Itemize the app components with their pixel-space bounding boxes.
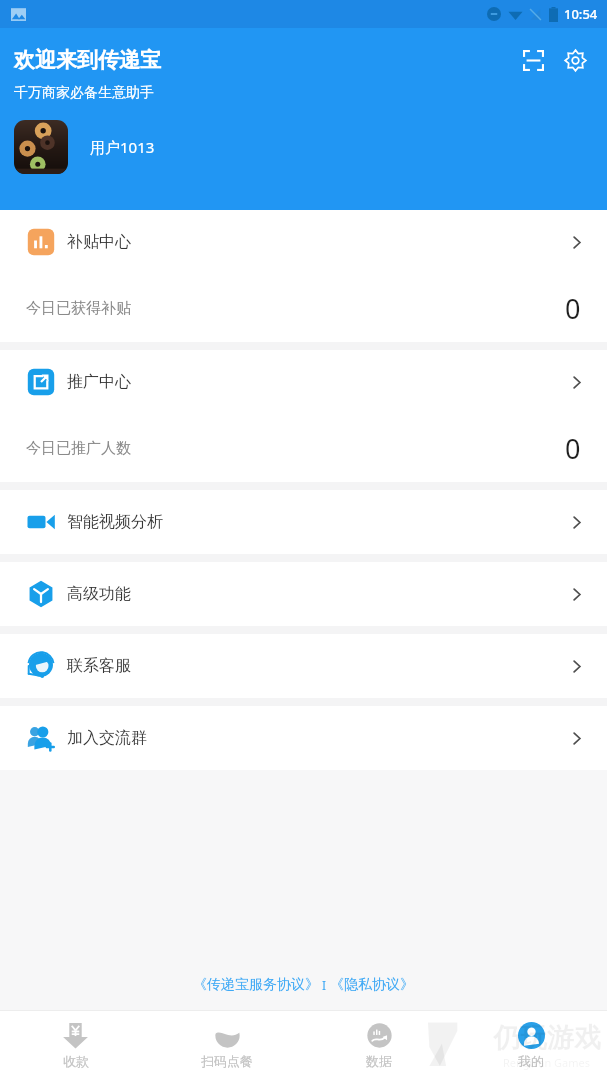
staticText: 补贴中心 (67, 232, 131, 252)
button[interactable]: 高级功能 (0, 562, 607, 626)
staticText: 扫码点餐 (201, 1053, 253, 1069)
staticText: 智能视频分析 (67, 512, 163, 532)
staticText: 推广中心 (67, 372, 131, 392)
staticText: 欢迎来到传递宝 (14, 47, 161, 73)
staticText: 《传递宝服务协议》 (193, 976, 319, 994)
staticText: I (319, 977, 330, 993)
button[interactable]: 智能视频分析 (0, 490, 607, 554)
staticText: 加入交流群 (67, 728, 147, 748)
button[interactable]: 补贴中心 (0, 210, 607, 274)
button[interactable]: 数据 (303, 1010, 455, 1080)
button[interactable]: 扫码点餐 (151, 1010, 303, 1080)
staticText: 用户1013 (90, 137, 155, 157)
staticText: 千万商家必备生意助手 (14, 84, 154, 102)
button[interactable]: 《传递宝服务协议》 (193, 976, 319, 994)
staticText: 《隐私协议》 (330, 976, 414, 994)
staticText: 我的 (518, 1053, 544, 1069)
button[interactable]: 推广中心 (0, 350, 607, 414)
button[interactable]: 用户1013 (14, 120, 155, 174)
staticText: 今日已推广人数 (26, 439, 131, 458)
button[interactable]: 《隐私协议》 (330, 976, 414, 994)
staticText: 10:54 (564, 5, 598, 23)
button[interactable]: 收款 (0, 1010, 151, 1080)
staticText: 今日已获得补贴 (26, 299, 131, 318)
button[interactable]: Settings (555, 40, 595, 80)
staticText: 0 (565, 430, 581, 467)
staticText: 数据 (366, 1053, 392, 1069)
button[interactable]: 加入交流群 (0, 706, 607, 770)
button[interactable]: 我的 (455, 1010, 607, 1080)
button[interactable]: Scan QR code (513, 40, 553, 80)
staticText: Rengwan Games (503, 1055, 591, 1070)
staticText: 高级功能 (67, 584, 131, 604)
staticText: 仍玩游戏 (493, 1021, 601, 1055)
button[interactable]: 联系客服 (0, 634, 607, 698)
staticText: 收款 (63, 1053, 89, 1069)
staticText: 联系客服 (67, 656, 131, 676)
staticText: 0 (565, 290, 581, 327)
